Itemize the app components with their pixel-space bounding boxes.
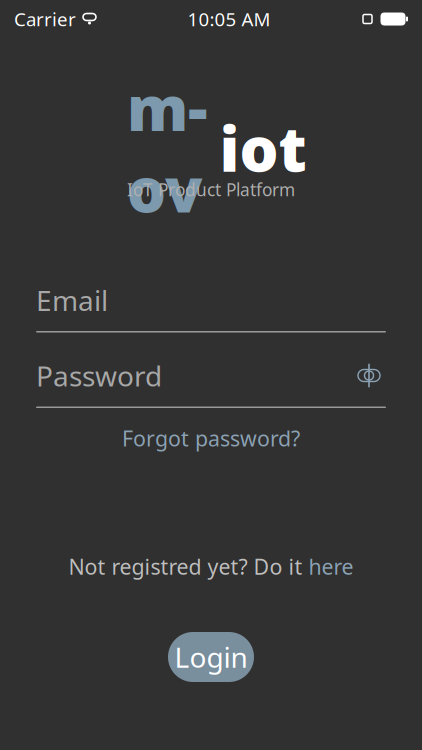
staticText: Email [36,281,108,319]
staticText: iot [219,107,306,189]
button[interactable]: Forgot password? [108,416,314,460]
staticText: here [308,552,353,581]
staticText: IoT Product Platform [127,178,295,201]
staticText: Login [174,638,247,676]
staticText: Password [36,357,162,394]
staticText: 10:05 AM [187,7,270,31]
staticText: mov [127,67,208,229]
staticText: Forgot password? [122,424,300,452]
staticText: Not registred yet? Do it [68,552,308,581]
button[interactable]: Not registred yet? Do it [58,546,363,587]
button[interactable]: Login [168,632,254,682]
button[interactable]: Show password [352,360,386,390]
staticText: Carrier [14,7,76,31]
